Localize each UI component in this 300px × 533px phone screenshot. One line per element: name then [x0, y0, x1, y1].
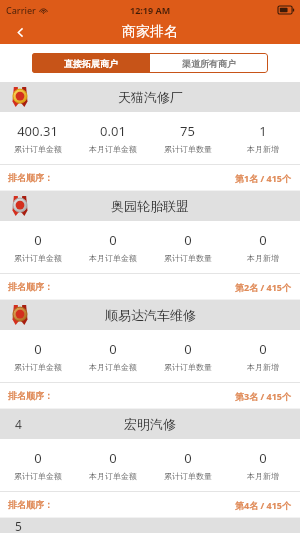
staticText: 0: [109, 340, 117, 358]
staticText: 0: [34, 340, 42, 358]
staticText: 0: [184, 231, 192, 249]
button[interactable]: 4: [0, 409, 300, 518]
staticText: 累计订单金额: [14, 471, 62, 481]
staticText: 12:19 AM: [130, 4, 171, 16]
staticText: 0: [259, 340, 267, 358]
staticText: 第2名 / 415个: [235, 281, 292, 293]
staticText: 奥园轮胎联盟: [111, 198, 189, 214]
staticText: 0: [184, 449, 192, 467]
button[interactable]: Back: [0, 20, 40, 44]
staticText: 商家排名: [122, 23, 178, 41]
button[interactable]: 渠道所有商户: [150, 53, 268, 73]
staticText: 0: [34, 449, 42, 467]
staticText: 渠道所有商户: [182, 58, 236, 69]
button[interactable]: 奥园轮胎联盟: [0, 191, 300, 300]
staticText: 本月订单金额: [89, 253, 137, 263]
staticText: Carrier: [6, 4, 36, 16]
staticText: 第3名 / 415个: [235, 390, 292, 402]
button[interactable]: 5: [0, 518, 300, 533]
button[interactable]: 顺易达汽车维修: [0, 300, 300, 409]
staticText: 1: [259, 122, 267, 140]
button[interactable]: 直接拓展商户: [32, 53, 150, 73]
staticText: 5: [15, 518, 22, 533]
staticText: 累计订单数量: [164, 471, 212, 481]
staticText: 本月新增: [247, 362, 279, 372]
staticText: 0: [109, 449, 117, 467]
staticText: 排名顺序：: [8, 499, 53, 510]
staticText: 0: [259, 231, 267, 249]
staticText: 第4名 / 415个: [235, 499, 292, 511]
staticText: 本月新增: [247, 144, 279, 154]
staticText: 顺易达汽车维修: [105, 307, 196, 323]
staticText: 400.31: [17, 122, 58, 140]
staticText: 本月新增: [247, 471, 279, 481]
staticText: 累计订单金额: [14, 253, 62, 263]
staticText: 本月订单金额: [89, 362, 137, 372]
staticText: 直接拓展商户: [64, 58, 118, 69]
staticText: 0: [259, 449, 267, 467]
staticText: 累计订单金额: [14, 362, 62, 372]
staticText: 宏明汽修: [124, 416, 176, 432]
button[interactable]: 天猫汽修厂: [0, 82, 300, 191]
staticText: 0: [184, 340, 192, 358]
staticText: 累计订单数量: [164, 144, 212, 154]
staticText: 排名顺序：: [8, 281, 53, 292]
staticText: 75: [180, 122, 195, 140]
staticText: 本月新增: [247, 253, 279, 263]
staticText: 累计订单数量: [164, 253, 212, 263]
staticText: 第1名 / 415个: [235, 172, 292, 184]
staticText: 本月订单金额: [89, 144, 137, 154]
staticText: 排名顺序：: [8, 172, 53, 183]
staticText: 0: [34, 231, 42, 249]
staticText: 0.01: [100, 122, 126, 140]
staticText: 0: [109, 231, 117, 249]
staticText: 累计订单数量: [164, 362, 212, 372]
staticText: 4: [15, 416, 22, 432]
staticText: 累计订单金额: [14, 144, 62, 154]
staticText: 排名顺序：: [8, 390, 53, 401]
staticText: 本月订单金额: [89, 471, 137, 481]
staticText: 天猫汽修厂: [118, 89, 183, 105]
